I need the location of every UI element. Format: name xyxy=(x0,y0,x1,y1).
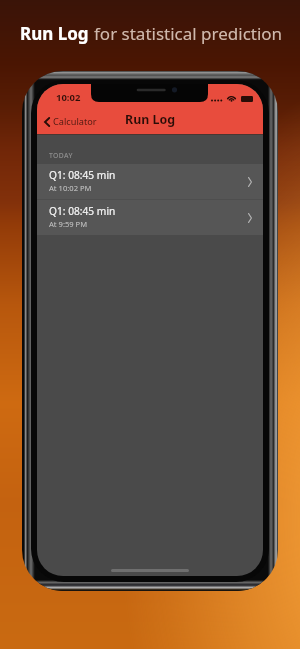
button[interactable]: Q1: 08:45 min xyxy=(37,164,263,199)
staticText: for statistical prediction xyxy=(94,22,283,45)
staticText: 10:02 xyxy=(56,91,81,104)
staticText: Q1: 08:45 min xyxy=(49,168,116,182)
staticText: Calculator xyxy=(53,115,97,128)
staticText: Run Log xyxy=(20,22,89,45)
staticText: At 10:02 PM xyxy=(49,183,92,193)
staticText: Run Log xyxy=(125,111,175,128)
staticText: TODAY xyxy=(49,151,73,160)
staticText: Q1: 08:45 min xyxy=(49,204,116,218)
button[interactable]: Calculator xyxy=(41,114,100,129)
button[interactable]: Q1: 08:45 min xyxy=(37,200,263,235)
staticText: At 9:59 PM xyxy=(49,219,88,229)
